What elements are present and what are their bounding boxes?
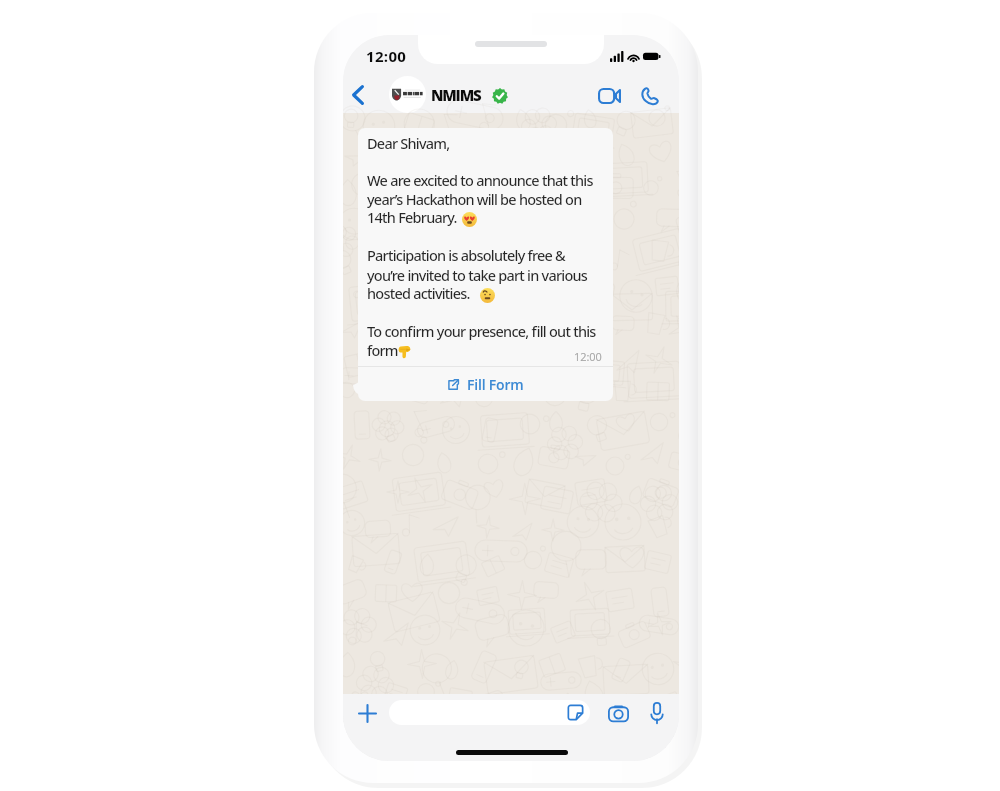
button[interactable]: Video call [586, 77, 632, 115]
button[interactable] [389, 700, 590, 725]
staticText: year’s Hackathon will be hosted on [367, 189, 582, 209]
staticText: NMIMS [431, 85, 481, 105]
staticText: To confirm your presence, fill out this [367, 321, 596, 341]
staticText: hosted activities. [367, 283, 473, 303]
staticText: Dear Shivam, [367, 133, 450, 153]
staticText: We are excited to announce that this [367, 170, 593, 190]
staticText: form [367, 340, 398, 360]
button[interactable]: Fill Form [358, 367, 613, 401]
staticText: Participation is absolutely free & [367, 245, 566, 265]
staticText: 12:00 [574, 349, 602, 364]
staticText: 14th February. [367, 207, 460, 227]
staticText: 12:00 [366, 46, 407, 66]
button[interactable]: Voice call [631, 77, 668, 115]
staticText: you’re invited to take part in various [367, 265, 588, 285]
button[interactable]: Attach [350, 696, 384, 730]
button[interactable]: Back [343, 75, 375, 114]
button[interactable]: Voice message [640, 696, 674, 730]
staticText: Fill Form [467, 375, 524, 394]
button[interactable]: Camera [601, 696, 635, 730]
